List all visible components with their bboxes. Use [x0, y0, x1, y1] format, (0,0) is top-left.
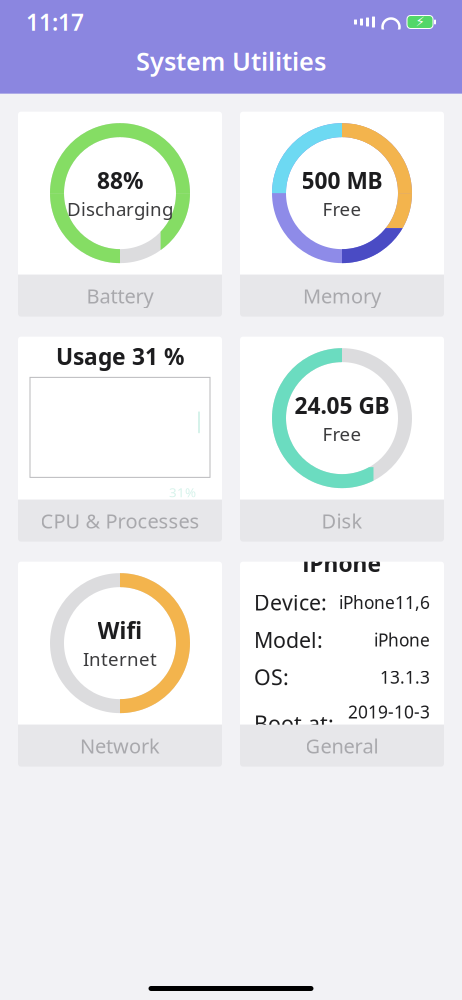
- staticText: Memory: [303, 282, 381, 309]
- staticText: OS:: [254, 663, 289, 691]
- staticText: 24.05 GB: [294, 390, 389, 420]
- staticText: 88%: [97, 165, 143, 195]
- button[interactable]: 500 MB: [240, 112, 444, 317]
- staticText: System Utilities: [136, 44, 326, 78]
- staticText: iPhone: [302, 548, 381, 578]
- staticText: iPhone11,6: [339, 591, 430, 614]
- staticText: Wifi: [97, 615, 142, 645]
- staticText: 11:17: [26, 7, 84, 37]
- button[interactable]: iPhone: [240, 562, 444, 767]
- staticText: Free: [322, 196, 361, 221]
- staticText: Battery: [86, 282, 153, 309]
- staticText: Boot at:: [254, 709, 334, 737]
- staticText: ⚡︎: [415, 14, 424, 29]
- staticText: Disk: [321, 507, 362, 534]
- button[interactable]: Usage 31 %: [18, 337, 222, 542]
- staticText: 2019-10-31 2…: [348, 700, 430, 746]
- staticText: Network: [80, 732, 160, 759]
- button[interactable]: Wifi: [18, 562, 222, 767]
- staticText: CPU & Processes: [40, 507, 199, 534]
- staticText: 500 MB: [301, 165, 382, 195]
- staticText: Free: [322, 421, 361, 446]
- staticText: Device:: [254, 588, 327, 616]
- staticText: iPhone: [374, 628, 430, 651]
- button[interactable]: 24.05 GB: [240, 337, 444, 542]
- staticText: 13.1.3: [380, 665, 430, 688]
- staticText: General: [305, 732, 378, 759]
- staticText: Usage 31 %: [56, 341, 184, 371]
- staticText: 31%: [169, 483, 196, 501]
- staticText: Internet: [83, 646, 157, 671]
- staticText: Discharging: [67, 196, 173, 221]
- staticText: Model:: [254, 625, 323, 654]
- button[interactable]: 88%: [18, 112, 222, 317]
